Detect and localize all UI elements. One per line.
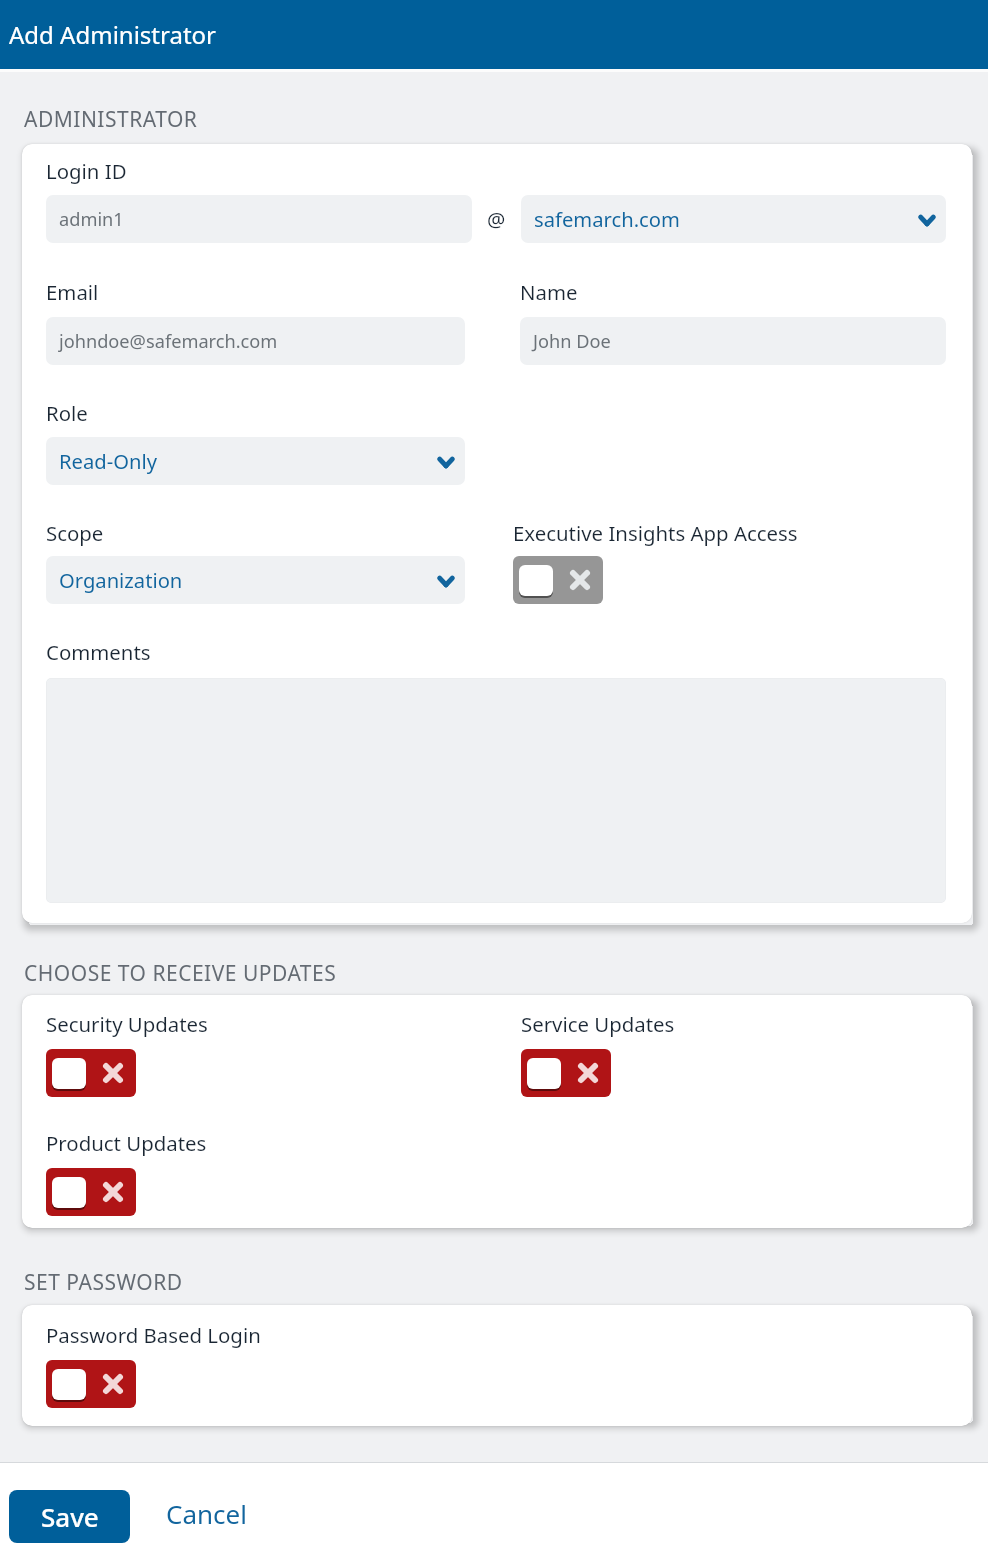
staticText: ADMINISTRATOR <box>24 105 198 134</box>
button[interactable]: Security Updates off <box>46 1049 136 1097</box>
button[interactable]: John Doe <box>520 317 946 365</box>
staticText: Scope <box>46 519 104 547</box>
staticText: SET PASSWORD <box>24 1268 183 1297</box>
button[interactable]: johndoe@safemarch.com <box>46 317 465 365</box>
staticText: John Doe <box>533 329 611 354</box>
button[interactable]: Cancel <box>165 1490 248 1543</box>
button[interactable]: safemarch.com <box>521 195 946 243</box>
staticText: Security Updates <box>46 1010 208 1038</box>
staticText: Password Based Login <box>46 1321 261 1349</box>
staticText: Service Updates <box>521 1010 675 1038</box>
button[interactable]: Password Based Login off <box>46 1360 136 1408</box>
staticText: Add Administrator <box>9 18 216 51</box>
button[interactable]: Product Updates off <box>46 1168 136 1216</box>
staticText: Email <box>46 278 99 306</box>
staticText: Login ID <box>46 157 127 185</box>
staticText: CHOOSE TO RECEIVE UPDATES <box>24 959 337 988</box>
staticText: Comments <box>46 638 151 666</box>
staticText: @ <box>487 205 506 233</box>
staticText: johndoe@safemarch.com <box>59 329 278 354</box>
button[interactable]: Save <box>9 1490 130 1543</box>
staticText: Cancel <box>166 1496 247 1531</box>
staticText: Name <box>520 278 578 306</box>
staticText: Save <box>41 1499 99 1534</box>
staticText: Read-Only <box>59 447 157 475</box>
staticText: Role <box>46 399 88 427</box>
staticText: Executive Insights App Access <box>513 519 798 547</box>
staticText: safemarch.com <box>534 205 680 233</box>
staticText: Organization <box>59 566 183 594</box>
button[interactable]: Executive Insights App Access off <box>513 556 603 604</box>
staticText: admin1 <box>59 207 124 232</box>
button[interactable]: admin1 <box>46 195 472 243</box>
button[interactable]: Read-Only <box>46 437 465 485</box>
button[interactable]: Service Updates off <box>521 1049 611 1097</box>
staticText: Product Updates <box>46 1129 207 1157</box>
button[interactable]: Organization <box>46 556 465 604</box>
